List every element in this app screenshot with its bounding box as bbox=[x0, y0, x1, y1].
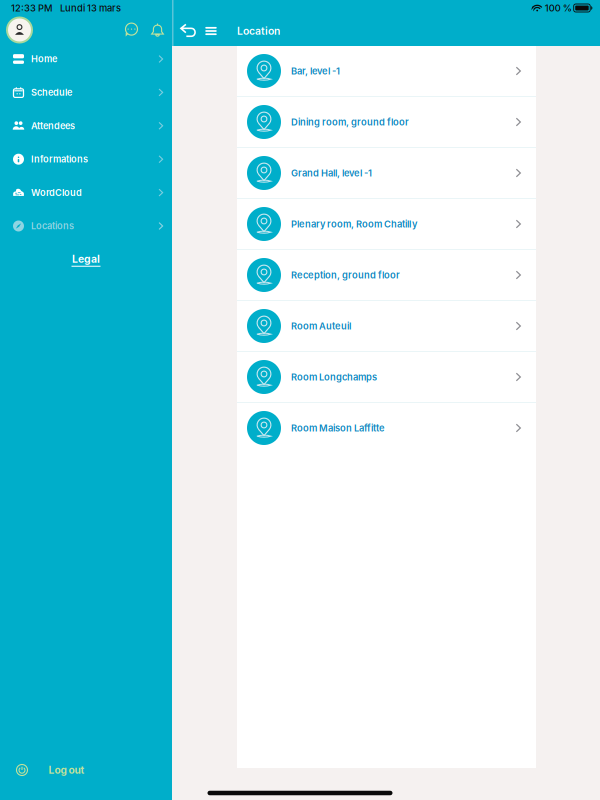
button[interactable]: Dining room, ground floor bbox=[237, 97, 536, 147]
button[interactable]: Log out bbox=[0, 756, 172, 784]
staticText: Informations bbox=[31, 154, 88, 165]
button[interactable]: Grand Hall, level -1 bbox=[237, 148, 536, 198]
staticText: Room Maison Laffitte bbox=[291, 422, 385, 434]
button[interactable]: Home bbox=[0, 42, 172, 76]
staticText: Dining room, ground floor bbox=[291, 116, 409, 128]
button[interactable]: Room Auteuil bbox=[237, 301, 536, 351]
staticText: Room Auteuil bbox=[291, 320, 351, 332]
staticText: Attendees bbox=[31, 120, 75, 131]
staticText: Room Longchamps bbox=[291, 371, 377, 383]
button[interactable]: Back bbox=[178, 18, 199, 44]
button[interactable]: Notifications bbox=[147, 19, 168, 40]
button[interactable]: WordCloud bbox=[0, 176, 172, 209]
button[interactable]: Messages bbox=[121, 19, 142, 40]
button[interactable]: Legal bbox=[0, 243, 172, 277]
staticText: 100 % bbox=[545, 2, 572, 14]
staticText: Reception, ground floor bbox=[291, 269, 400, 281]
staticText: Legal bbox=[72, 253, 100, 265]
button[interactable]: Informations bbox=[0, 142, 172, 176]
button[interactable]: Plenary room, Room Chatilly bbox=[237, 199, 536, 249]
button[interactable]: Schedule bbox=[0, 76, 172, 109]
staticText: Bar, level -1 bbox=[291, 65, 340, 77]
staticText: Locations bbox=[31, 220, 74, 231]
staticText: Home bbox=[31, 53, 57, 64]
staticText: Grand Hall, level -1 bbox=[291, 167, 372, 179]
button[interactable]: Menu bbox=[202, 18, 220, 44]
staticText: WordCloud bbox=[31, 187, 82, 198]
staticText: Log out bbox=[48, 764, 84, 776]
staticText: Location bbox=[237, 25, 280, 37]
button[interactable]: Room Maison Laffitte bbox=[237, 403, 536, 453]
staticText: Plenary room, Room Chatilly bbox=[291, 218, 417, 230]
staticText: Schedule bbox=[31, 87, 72, 98]
button[interactable]: Locations bbox=[0, 209, 172, 243]
button[interactable]: Attendees bbox=[0, 109, 172, 142]
staticText: 12:33 PM bbox=[11, 2, 53, 14]
button[interactable]: Reception, ground floor bbox=[237, 250, 536, 300]
button[interactable]: Bar, level -1 bbox=[237, 46, 536, 96]
button[interactable]: Room Longchamps bbox=[237, 352, 536, 402]
staticText: Lundi 13 mars bbox=[60, 2, 121, 14]
